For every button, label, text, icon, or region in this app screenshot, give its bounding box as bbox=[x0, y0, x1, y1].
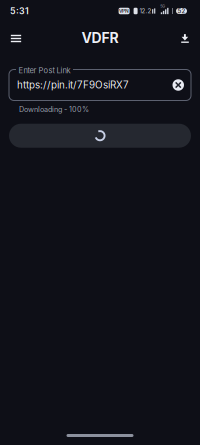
staticText: 5:31 bbox=[10, 6, 29, 16]
staticText: 12.2 bbox=[140, 7, 152, 15]
button[interactable]: Clear text bbox=[172, 79, 184, 91]
button[interactable] bbox=[9, 124, 191, 148]
staticText: Downloading - 100% bbox=[19, 105, 89, 114]
staticText: VDFR bbox=[81, 29, 118, 46]
staticText: 52 bbox=[177, 7, 185, 15]
staticText: 5G bbox=[160, 4, 165, 9]
staticText: https://pin.it/7F9OsiRX7 bbox=[17, 79, 129, 91]
staticText: Enter Post Link bbox=[18, 66, 70, 75]
button[interactable]: Menu bbox=[3, 25, 29, 51]
staticText: VPN bbox=[119, 8, 129, 14]
button[interactable]: Downloads bbox=[172, 25, 198, 51]
